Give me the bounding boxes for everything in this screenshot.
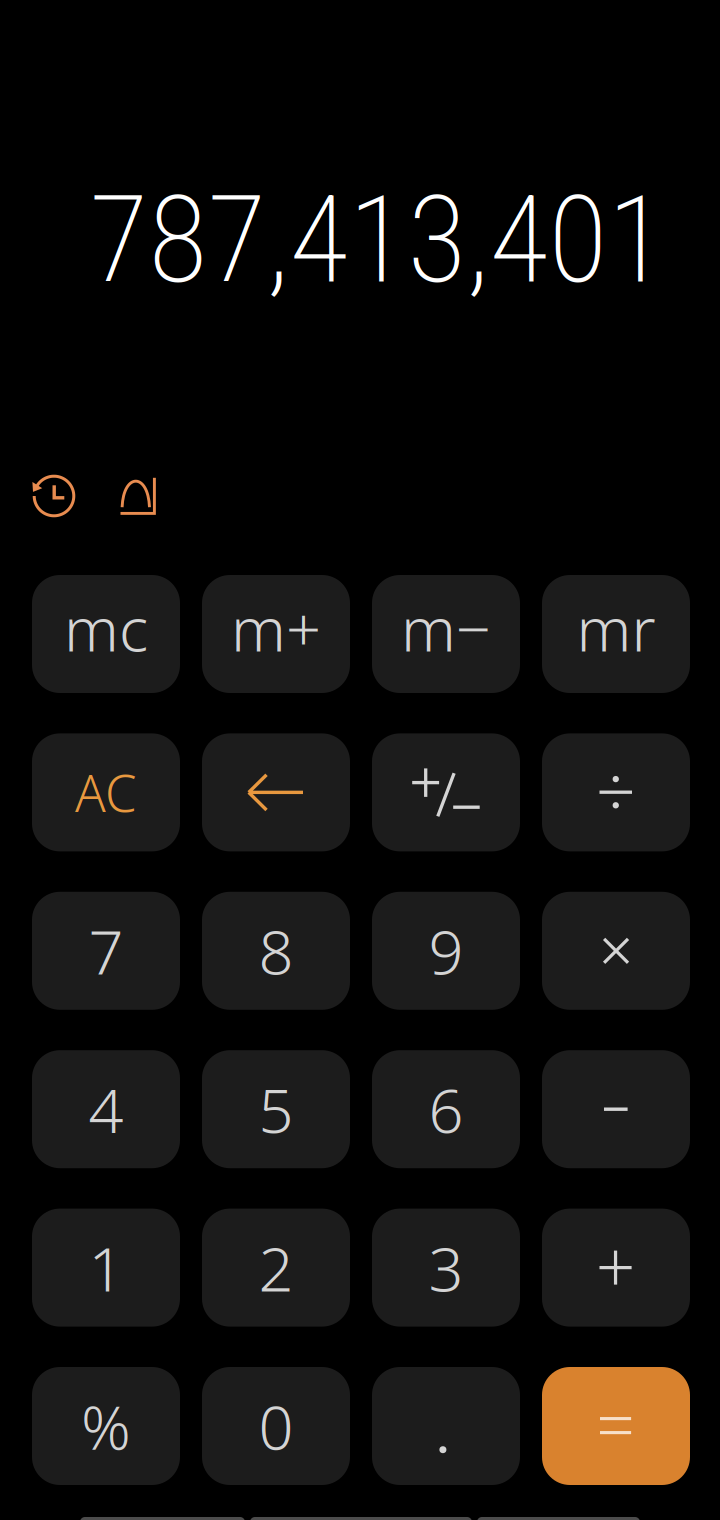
staticText: m+ [231, 587, 321, 668]
staticText: 5 [258, 1068, 293, 1150]
button[interactable]: 3 [372, 1209, 520, 1327]
button[interactable]: Add [542, 1209, 690, 1327]
staticText: 6 [428, 1068, 463, 1150]
button[interactable]: 1 [32, 1209, 180, 1327]
button[interactable]: 5 [202, 1050, 350, 1168]
button[interactable]: Equals [542, 1367, 690, 1485]
button[interactable]: Percent [32, 1367, 180, 1485]
button[interactable]: Memory clear [32, 575, 180, 693]
staticText: 7 [88, 910, 123, 991]
button[interactable]: Toggle sign [372, 733, 520, 851]
staticText: 9 [428, 910, 463, 991]
staticText: % [81, 1385, 131, 1467]
staticText: m− [401, 587, 491, 668]
button[interactable]: Memory recall [542, 575, 690, 693]
staticText: AC [75, 759, 137, 826]
button[interactable]: 4 [32, 1050, 180, 1168]
staticText: 2 [258, 1227, 293, 1308]
button[interactable]: Memory add [202, 575, 350, 693]
button[interactable]: 0 [202, 1367, 350, 1485]
button[interactable]: Multiply [542, 892, 690, 1010]
staticText: 8 [258, 910, 293, 991]
button[interactable]: History [28, 470, 80, 522]
staticText: 3 [428, 1227, 463, 1308]
button[interactable]: 6 [372, 1050, 520, 1168]
staticText: 1 [88, 1227, 123, 1308]
button[interactable]: Memory subtract [372, 575, 520, 693]
button[interactable]: 2 [202, 1209, 350, 1327]
button[interactable]: Backspace [202, 733, 350, 851]
staticText: 787,413,401 [89, 169, 666, 311]
button[interactable]: Subtract [542, 1050, 690, 1168]
staticText: 0 [258, 1385, 293, 1467]
staticText: mr [576, 587, 655, 668]
button[interactable]: 7 [32, 892, 180, 1010]
button[interactable]: All clear [32, 733, 180, 851]
button[interactable]: Decimal point [372, 1367, 520, 1485]
staticText: 4 [88, 1068, 123, 1150]
button[interactable]: 9 [372, 892, 520, 1010]
staticText: mc [64, 587, 148, 668]
button[interactable]: Functions [120, 477, 155, 514]
button[interactable]: 8 [202, 892, 350, 1010]
button[interactable]: Divide [542, 733, 690, 851]
